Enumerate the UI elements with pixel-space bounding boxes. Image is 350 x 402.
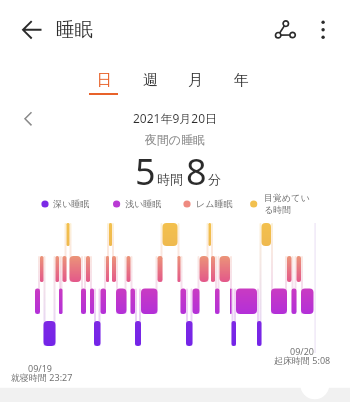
- staticText: レム睡眠: [196, 198, 233, 209]
- staticText: 日: [97, 71, 112, 90]
- staticText: 5: [135, 147, 156, 196]
- staticText: 就寝時間 23:27: [11, 371, 73, 383]
- staticText: 睡眠: [56, 18, 93, 41]
- staticText: 月: [188, 71, 203, 90]
- button[interactable]: Share: [272, 16, 300, 44]
- staticText: 深い睡眠: [53, 198, 90, 209]
- staticText: 目覚めてい る時間: [264, 192, 310, 216]
- button[interactable]: 週: [130, 64, 170, 96]
- staticText: 起床時間 5:08: [274, 354, 331, 366]
- staticText: 夜間の睡眠: [0, 132, 350, 147]
- button[interactable]: 日: [84, 64, 124, 96]
- staticText: 2021年9月20日: [0, 110, 350, 126]
- staticText: 09/20: [290, 345, 314, 357]
- button[interactable]: 月: [175, 64, 215, 96]
- staticText: 8: [186, 147, 207, 196]
- staticText: 分: [208, 171, 221, 187]
- button[interactable]: Previous day: [16, 106, 42, 132]
- staticText: 09/19: [28, 362, 52, 374]
- button[interactable]: More options: [312, 16, 336, 40]
- staticText: 時間: [157, 171, 183, 187]
- button[interactable]: Back: [14, 14, 46, 46]
- button[interactable]: 年: [221, 64, 261, 96]
- staticText: 浅い睡眠: [125, 198, 162, 209]
- staticText: 年: [234, 71, 249, 90]
- staticText: 週: [143, 71, 158, 90]
